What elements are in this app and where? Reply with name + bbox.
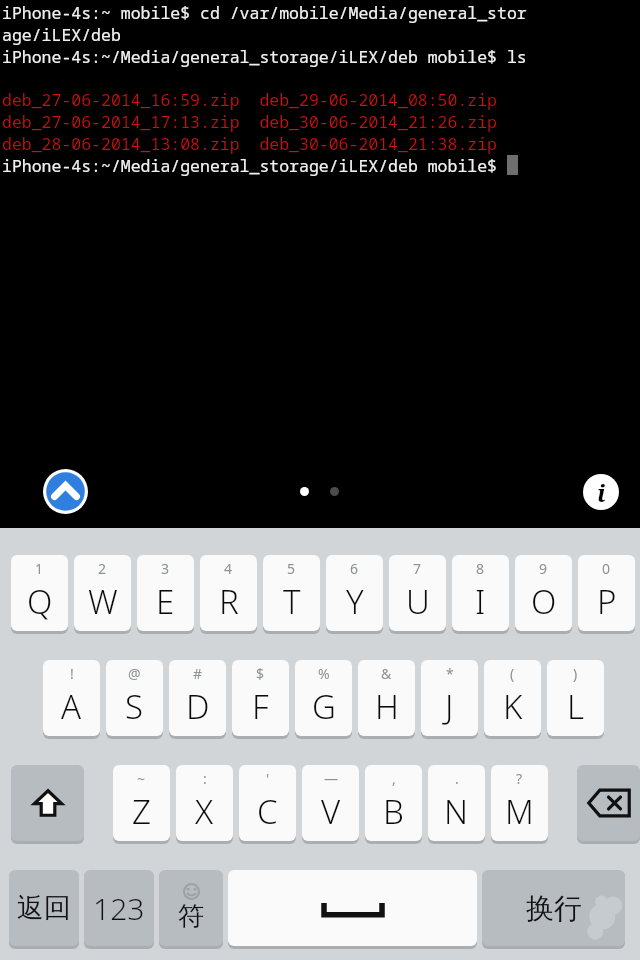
staticText: iPhone-4s:~ mobile$ cd /var/mobile/Media… (2, 1, 527, 23)
staticText: E (156, 579, 175, 624)
staticText: 123 (93, 888, 145, 929)
staticText: ? (516, 769, 523, 788)
staticText: & (381, 664, 392, 683)
staticText: O (531, 579, 557, 624)
staticText: Q (27, 579, 53, 624)
staticText: 5 (287, 559, 296, 578)
staticText: * (446, 664, 454, 683)
staticText: 7 (413, 559, 422, 578)
staticText: U (406, 579, 430, 624)
button[interactable]: Info (583, 474, 619, 510)
staticText: J (445, 684, 454, 729)
button[interactable]: U (389, 554, 446, 632)
button[interactable]: K (484, 659, 541, 737)
staticText: P (597, 579, 617, 624)
button[interactable]: X (176, 764, 233, 842)
button[interactable]: N (428, 764, 485, 842)
staticText: A (61, 684, 82, 729)
button[interactable]: O (515, 554, 572, 632)
staticText: L (567, 684, 584, 729)
button[interactable]: H (358, 659, 415, 737)
button[interactable]: S (106, 659, 163, 737)
staticText: D (186, 684, 210, 729)
button[interactable]: D (169, 659, 226, 737)
staticText: iPhone-4s:~/Media/general_storage/iLEX/d… (2, 45, 527, 67)
staticText: . (455, 769, 459, 788)
staticText: deb_27-06-2014_17:13.zip deb_30-06-2014_… (2, 110, 497, 132)
button[interactable]: Space (228, 869, 477, 947)
staticText: 1 (35, 559, 44, 578)
staticText: , (392, 769, 396, 788)
button[interactable]: 换行 (482, 869, 625, 947)
staticText: V (321, 789, 341, 834)
button[interactable]: A (43, 659, 100, 737)
button[interactable]: T (263, 554, 320, 632)
button[interactable]: V (302, 764, 359, 842)
staticText: i (597, 476, 606, 509)
staticText: deb_27-06-2014_16:59.zip deb_29-06-2014_… (2, 88, 497, 110)
staticText: F (252, 684, 269, 729)
staticText: S (125, 684, 144, 729)
staticText: 3 (161, 559, 170, 578)
button[interactable]: 返回 (9, 869, 79, 947)
button[interactable]: R (200, 554, 257, 632)
staticText: iPhone-4s:~/Media/general_storage/iLEX/d… (2, 154, 507, 176)
staticText: ' (266, 769, 270, 788)
staticText: Z (132, 789, 151, 834)
staticText: 符 (178, 900, 204, 933)
button[interactable]: L (547, 659, 604, 737)
button[interactable]: B (365, 764, 422, 842)
staticText: M (505, 789, 534, 834)
staticText: age/iLEX/deb (2, 23, 121, 45)
staticText: K (503, 684, 523, 729)
staticText: 4 (224, 559, 233, 578)
button[interactable]: P (578, 554, 635, 632)
staticText: ! (70, 664, 74, 683)
staticText: 9 (539, 559, 548, 578)
button[interactable]: M (491, 764, 548, 842)
button[interactable]: W (74, 554, 131, 632)
button[interactable]: G (295, 659, 352, 737)
staticText: R (219, 579, 239, 624)
staticText: 0 (602, 559, 611, 578)
staticText: T (283, 579, 301, 624)
staticText: C (257, 789, 278, 834)
staticText: G (312, 684, 336, 729)
button[interactable]: Backspace (577, 764, 640, 842)
staticText: # (193, 664, 203, 683)
staticText: 6 (350, 559, 359, 578)
staticText: ) (573, 664, 578, 683)
button[interactable]: I (452, 554, 509, 632)
staticText: 8 (476, 559, 485, 578)
button[interactable]: E (137, 554, 194, 632)
staticText: : (203, 769, 207, 788)
staticText: W (88, 579, 118, 624)
button[interactable]: 123 (84, 869, 154, 947)
button[interactable]: Shift (11, 764, 84, 842)
button[interactable]: J (421, 659, 478, 737)
staticText: N (444, 789, 469, 834)
button[interactable]: Q (11, 554, 68, 632)
button[interactable]: 符号 (159, 869, 223, 947)
button[interactable]: Show keyboard toolbar (43, 469, 88, 514)
staticText: 2 (98, 559, 107, 578)
staticText: H (375, 684, 399, 729)
staticText: I (475, 579, 486, 624)
staticText: B (383, 789, 404, 834)
staticText: — (324, 769, 338, 788)
button[interactable]: Z (113, 764, 170, 842)
staticText: @ (128, 664, 141, 683)
button[interactable]: F (232, 659, 289, 737)
staticText: ~ (137, 769, 146, 788)
button[interactable]: C (239, 764, 296, 842)
staticText: 换行 (526, 891, 582, 926)
staticText: 返回 (17, 891, 71, 925)
staticText: $ (256, 664, 265, 683)
button[interactable]: Y (326, 554, 383, 632)
staticText: X (195, 789, 214, 834)
staticText: % (318, 664, 330, 683)
staticText: Y (346, 579, 364, 624)
staticText: deb_28-06-2014_13:08.zip deb_30-06-2014_… (2, 132, 497, 154)
staticText: ( (510, 664, 515, 683)
